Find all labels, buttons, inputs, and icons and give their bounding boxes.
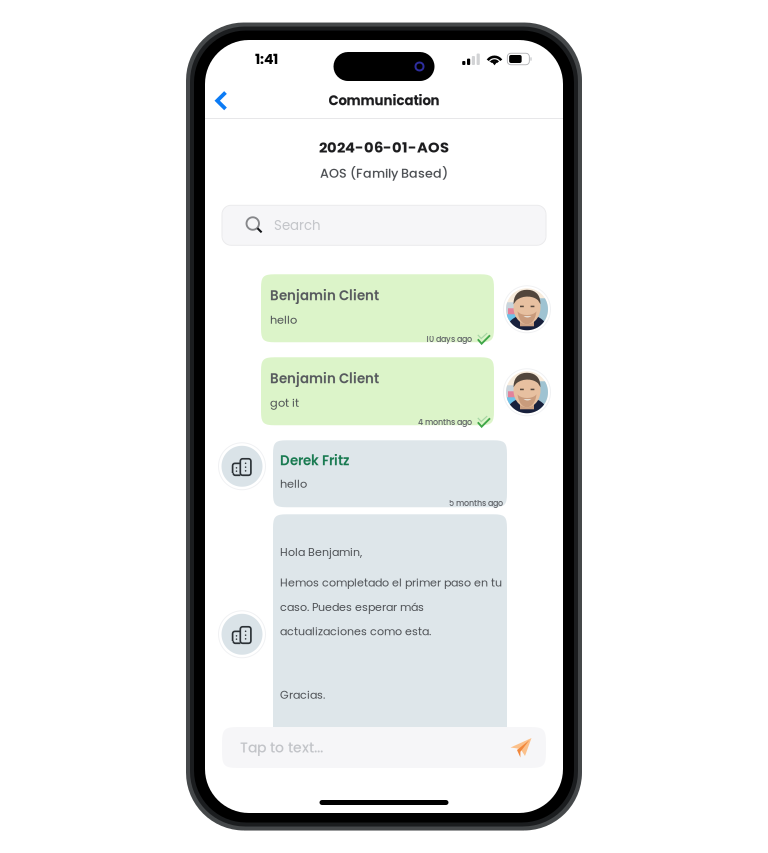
staticText: 1:41	[255, 49, 278, 69]
staticText: Benjamin Client	[270, 369, 379, 388]
staticText: Tap to text...	[240, 738, 323, 757]
staticText: got it	[270, 395, 299, 411]
staticText: caso. Puedes esperar más	[280, 599, 424, 615]
staticText: Benjamin Client	[270, 286, 379, 305]
staticText: Search	[274, 216, 321, 235]
staticText: AOS (Family Based)	[320, 164, 448, 182]
staticText: Hola Benjamin,	[280, 544, 362, 560]
staticText: 2024-06-01-AOS	[319, 137, 449, 157]
staticText: Derek Fritz	[280, 451, 349, 470]
staticText: Communication	[328, 91, 439, 110]
staticText: actualizaciones como esta.	[280, 624, 431, 639]
staticText: 4 months ago	[418, 417, 472, 428]
staticText: Hemos completado el primer paso en tu	[280, 575, 502, 590]
staticText: 5 months ago	[449, 498, 503, 509]
button[interactable]: Search	[222, 205, 546, 245]
button[interactable]: Tap to text...	[222, 727, 546, 768]
staticText: hello	[270, 312, 297, 328]
staticText: hello	[280, 476, 307, 492]
staticText: 10 days ago	[426, 334, 472, 345]
staticText: Gracias.	[280, 687, 325, 703]
button[interactable]: Back	[205, 77, 242, 118]
